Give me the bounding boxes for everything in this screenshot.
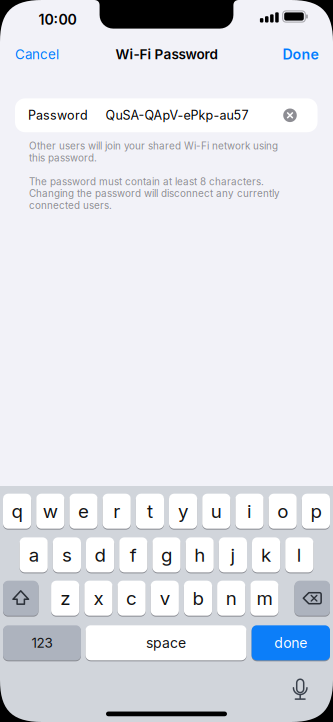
button[interactable]: a [20, 537, 48, 573]
button[interactable]: m [250, 580, 278, 616]
button[interactable]: i [235, 493, 264, 529]
button[interactable]: j [219, 537, 247, 573]
staticText: a [29, 544, 39, 566]
button[interactable]: p [302, 493, 330, 529]
button[interactable]: Shift [3, 580, 38, 616]
staticText: o [277, 500, 288, 522]
staticText: y [178, 500, 188, 522]
staticText: Wi-Fi Password [115, 46, 217, 63]
button[interactable]: x [84, 580, 112, 616]
button[interactable]: w [36, 493, 64, 529]
button[interactable]: f [119, 537, 147, 573]
staticText: z [60, 587, 70, 609]
button[interactable]: k [252, 537, 280, 573]
button[interactable]: y [169, 493, 197, 529]
staticText: d [95, 544, 106, 566]
staticText: f [130, 544, 137, 566]
staticText: Done [282, 46, 318, 63]
staticText: Other users will join your shared Wi-Fi … [29, 140, 278, 164]
staticText: 123 [31, 635, 52, 651]
staticText: v [160, 587, 170, 609]
button[interactable]: q [3, 493, 31, 529]
staticText: Password [28, 108, 88, 123]
staticText: p [310, 500, 321, 522]
staticText: u [211, 500, 222, 522]
button[interactable]: d [86, 537, 114, 573]
staticText: l [297, 544, 302, 566]
button[interactable]: s [53, 537, 81, 573]
button[interactable]: z [51, 580, 79, 616]
button[interactable]: t [136, 493, 164, 529]
button[interactable]: 123 [3, 625, 81, 661]
staticText: m [256, 587, 272, 609]
staticText: g [161, 544, 172, 566]
button[interactable]: Done [282, 46, 318, 63]
staticText: j [230, 544, 235, 566]
button[interactable]: Delete [294, 580, 330, 616]
button[interactable]: c [117, 580, 146, 616]
button[interactable]: space [85, 625, 246, 661]
button[interactable]: u [202, 493, 230, 529]
staticText: QuSA-QApV-ePkp-au57 [105, 108, 248, 123]
staticText: c [126, 587, 137, 609]
button[interactable]: b [184, 580, 212, 616]
staticText: x [93, 587, 103, 609]
staticText: k [261, 544, 271, 566]
staticText: t [147, 500, 153, 522]
button[interactable]: g [152, 537, 181, 573]
staticText: w [43, 500, 58, 522]
button[interactable]: Dictation [292, 678, 308, 700]
button[interactable]: l [285, 537, 313, 573]
button[interactable]: o [269, 493, 297, 529]
staticText: e [78, 500, 89, 522]
button[interactable]: Cancel [15, 46, 59, 62]
staticText: n [226, 587, 237, 609]
staticText: h [194, 544, 205, 566]
button[interactable]: done [252, 625, 330, 661]
staticText: The password must contain at least 8 cha… [29, 176, 280, 211]
staticText: done [274, 634, 307, 651]
staticText: i [247, 500, 252, 522]
staticText: space [146, 634, 186, 651]
button[interactable]: v [151, 580, 179, 616]
button[interactable]: Clear text [283, 108, 297, 122]
staticText: b [192, 587, 203, 609]
button[interactable]: h [186, 537, 214, 573]
staticText: s [62, 544, 72, 566]
staticText: q [12, 500, 23, 522]
button[interactable]: r [103, 493, 131, 529]
staticText: 10:00 [38, 11, 76, 28]
staticText: r [113, 500, 120, 522]
button[interactable]: n [217, 580, 245, 616]
staticText: Cancel [15, 46, 59, 62]
button[interactable]: e [69, 493, 98, 529]
